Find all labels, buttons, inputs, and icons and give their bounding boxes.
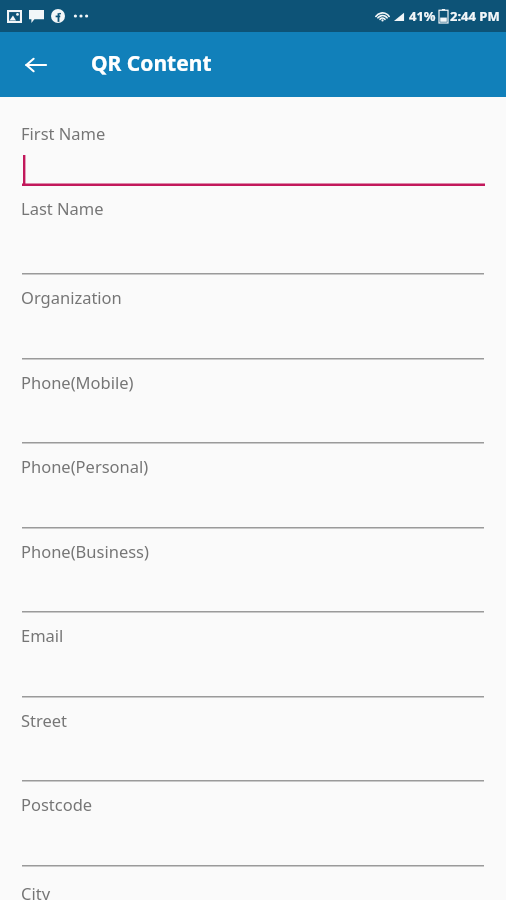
button[interactable]: Email: [0, 614, 506, 699]
staticText: City: [21, 882, 51, 900]
staticText: Email: [21, 624, 64, 646]
staticText: Organization: [21, 286, 122, 308]
staticText: First Name: [21, 122, 106, 144]
staticText: QR Content: [91, 49, 212, 78]
button[interactable]: Back: [8, 37, 64, 93]
button[interactable]: Street: [0, 699, 506, 783]
staticText: Postcode: [21, 793, 93, 815]
staticText: Last Name: [21, 197, 104, 219]
staticText: Phone(Business): [21, 540, 149, 562]
staticText: 41%: [409, 7, 436, 25]
button[interactable]: Postcode: [0, 783, 506, 868]
button[interactable]: Phone(Mobile): [0, 361, 506, 445]
button[interactable]: City: [0, 868, 506, 890]
staticText: Phone(Personal): [21, 455, 149, 477]
button[interactable]: First Name: [0, 97, 506, 187]
button[interactable]: Organization: [0, 276, 506, 361]
button[interactable]: Phone(Business): [0, 530, 506, 614]
button[interactable]: Phone(Personal): [0, 445, 506, 530]
button[interactable]: Last Name: [0, 187, 506, 276]
staticText: 2:44 PM: [450, 7, 500, 25]
staticText: Phone(Mobile): [21, 371, 134, 393]
staticText: Street: [21, 709, 68, 731]
